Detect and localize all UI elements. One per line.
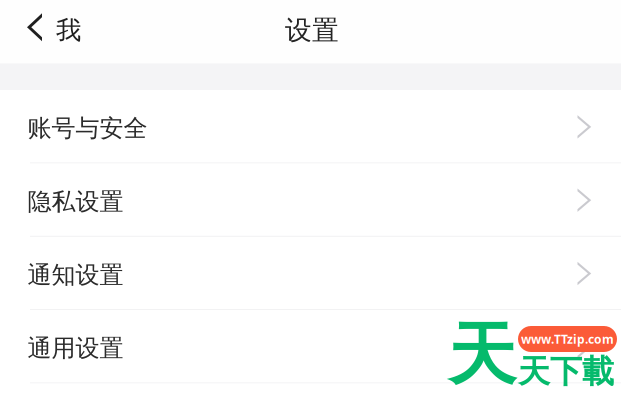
button[interactable]: 账号与安全 [0, 90, 621, 163]
staticText: 通知设置 [27, 260, 123, 290]
staticText: 我 [56, 15, 81, 46]
button[interactable]: 通知设置 [0, 237, 621, 310]
staticText: www.TTzip.com [521, 331, 614, 347]
staticText: 隐私设置 [27, 187, 123, 216]
staticText: 天下載 [518, 352, 614, 391]
staticText: 设置 [285, 14, 339, 47]
staticText: 通用设置 [27, 334, 123, 363]
button[interactable]: 隐私设置 [0, 163, 621, 237]
staticText: 账号与安全 [27, 114, 147, 143]
staticText: 天 [448, 313, 516, 395]
button[interactable]: 我 [0, 0, 97, 64]
button[interactable]: 通用设置 [0, 310, 621, 383]
